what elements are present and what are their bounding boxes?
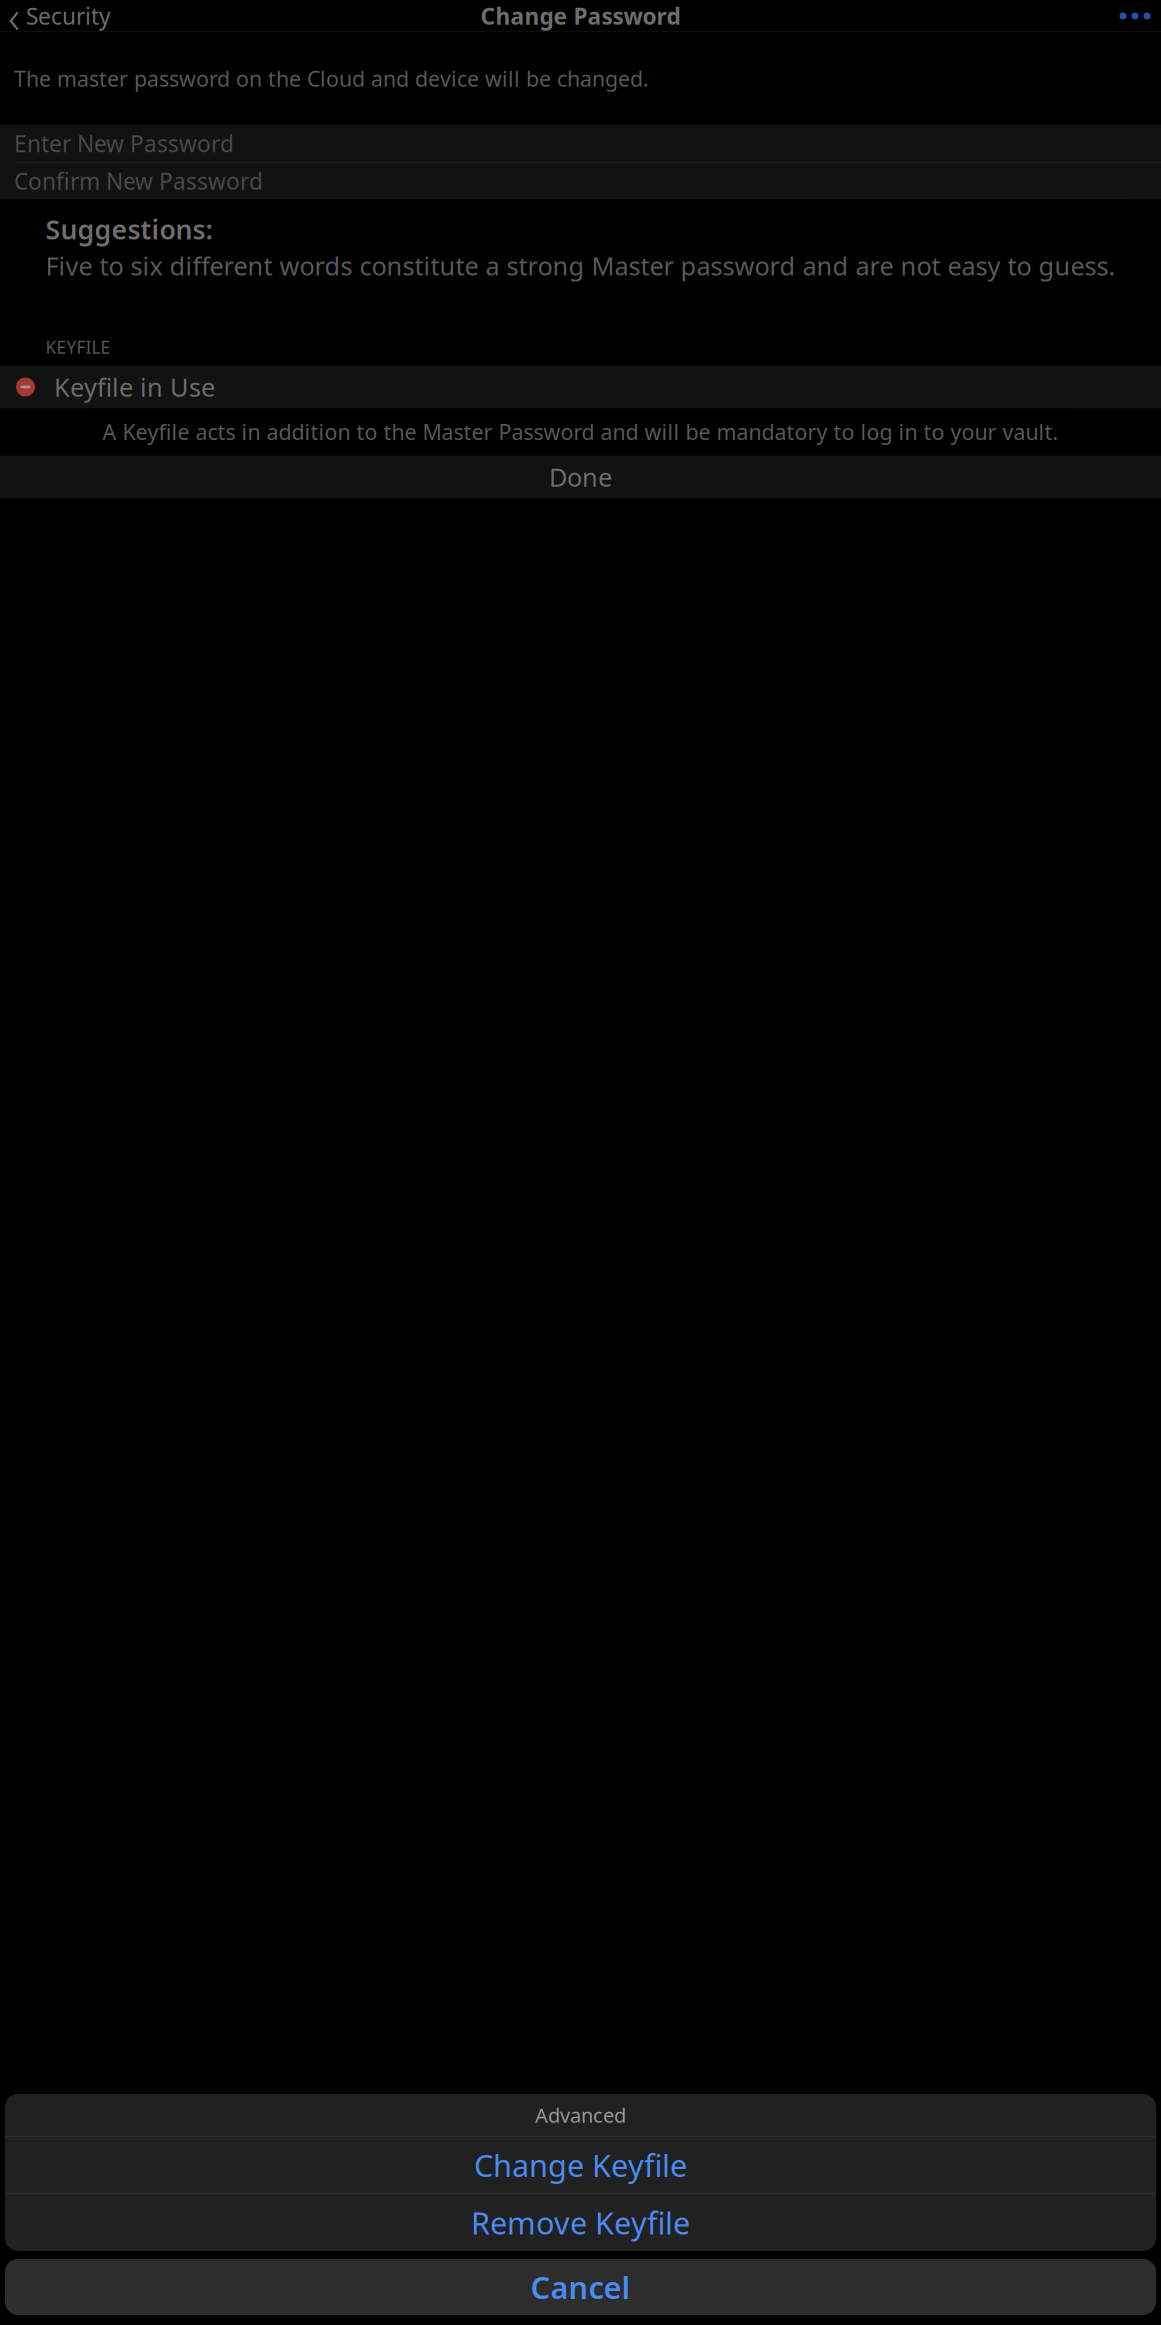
staticText: Change Password	[480, 1, 680, 31]
button[interactable]: Keyfile in Use	[0, 365, 1161, 408]
staticText: Remove Keyfile	[471, 2202, 690, 2243]
staticText: Change Keyfile	[474, 2145, 687, 2185]
button[interactable]: ‹	[4, 0, 115, 38]
staticText: Advanced	[535, 2102, 626, 2128]
button[interactable]: Cancel	[5, 2259, 1156, 2315]
staticText: Confirm New Password	[14, 166, 263, 196]
staticText: Done	[549, 460, 612, 494]
staticText: The master password on the Cloud and dev…	[14, 64, 649, 93]
staticText: Five to six different words constitute a…	[45, 249, 1115, 282]
staticText: Keyfile in Use	[54, 370, 215, 404]
staticText: ‹	[8, 0, 20, 46]
staticText: Suggestions:	[45, 211, 212, 247]
staticText: A Keyfile acts in addition to the Master…	[102, 417, 1058, 446]
staticText: Security	[26, 1, 111, 31]
button[interactable]: Done	[0, 455, 1161, 498]
button[interactable]: Remove Keyfile	[5, 2194, 1156, 2251]
staticText: KEYFILE	[45, 335, 110, 358]
button[interactable]: More options	[1113, 0, 1157, 38]
button[interactable]: Change Keyfile	[5, 2136, 1156, 2193]
staticText: Cancel	[530, 2267, 630, 2307]
staticText: Enter New Password	[14, 128, 234, 158]
